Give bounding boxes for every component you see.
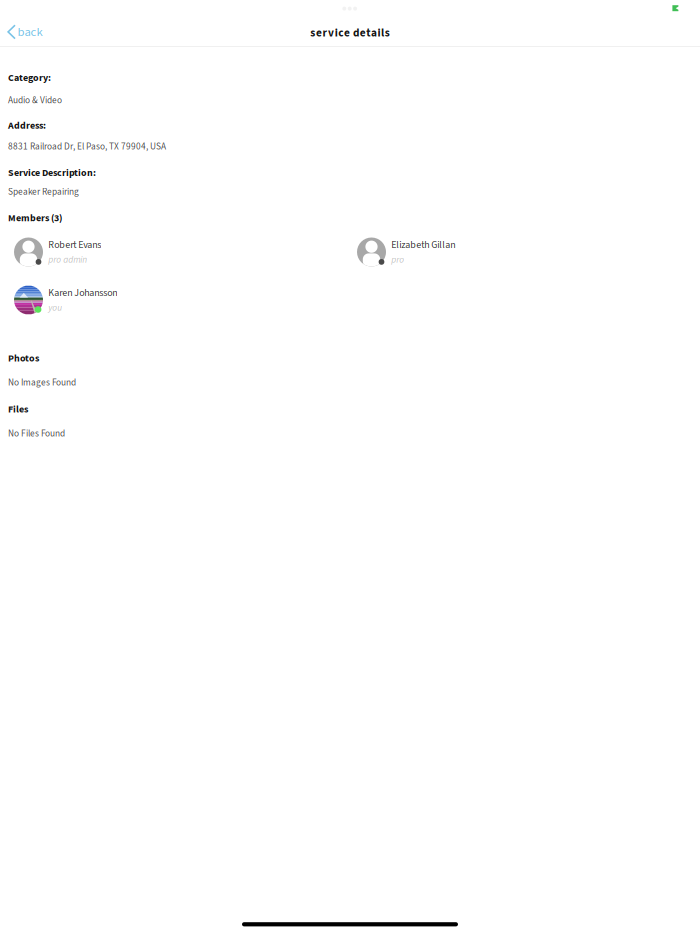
staticText: No Files Found (8, 427, 65, 440)
staticText: Elizabeth Gillan (391, 238, 455, 252)
staticText: Robert Evans (48, 238, 101, 252)
button[interactable]: Robert Evans (14, 237, 350, 266)
staticText: Files (8, 402, 28, 416)
staticText: Audio & Video (8, 94, 62, 107)
staticText: Photos (8, 351, 39, 365)
button[interactable]: back (0, 21, 48, 45)
staticText: you (48, 301, 62, 314)
staticText: back (17, 23, 42, 41)
button[interactable]: Elizabeth Gillan (357, 237, 693, 266)
button[interactable]: Karen Johansson (14, 285, 350, 314)
staticText: Category: (8, 71, 51, 85)
staticText: Karen Johansson (48, 286, 117, 300)
staticText: pro admin (48, 253, 87, 266)
staticText: Members (3) (8, 211, 62, 225)
staticText: service details (310, 25, 390, 41)
staticText: Speaker Repairing (8, 185, 79, 198)
staticText: 8831 Railroad Dr, El Paso, TX 79904, USA (8, 140, 166, 153)
staticText: Service Description: (8, 166, 96, 180)
staticText: pro (391, 253, 404, 266)
staticText: Address: (8, 118, 46, 133)
staticText: No Images Found (8, 376, 76, 389)
